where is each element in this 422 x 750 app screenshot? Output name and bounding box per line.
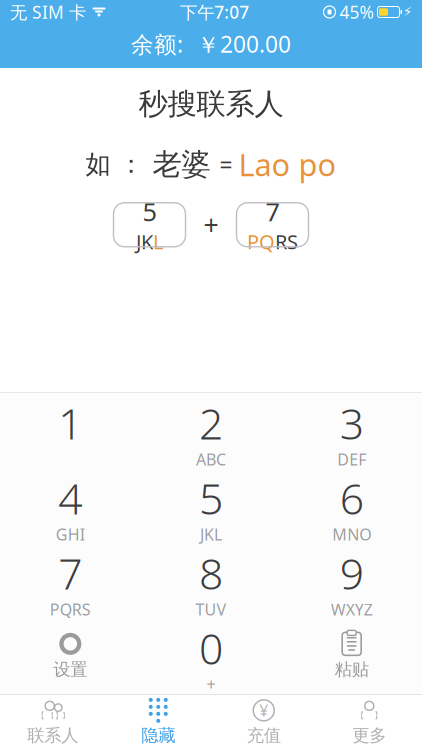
staticText: S — [287, 228, 298, 255]
staticText: 5 — [142, 195, 156, 228]
button[interactable]: 联系人 — [0, 698, 105, 747]
button[interactable]: 3 — [281, 393, 422, 468]
staticText: 45% — [339, 0, 373, 23]
staticText: 更多 — [352, 725, 386, 746]
staticText: 2 — [199, 395, 223, 451]
button[interactable]: 0 — [141, 618, 281, 693]
button[interactable]: 1 — [0, 393, 141, 468]
staticText: 4 — [58, 470, 82, 526]
staticText: JKL — [200, 524, 222, 545]
staticText: WXYZ — [331, 599, 373, 620]
button[interactable]: 2 — [141, 393, 281, 468]
staticText: 充值 — [247, 725, 281, 746]
staticText: P — [247, 228, 259, 255]
button[interactable]: 4 — [0, 468, 141, 543]
staticText: ￥200.00 — [183, 29, 291, 59]
staticText: PQRS — [50, 599, 91, 620]
button[interactable]: 粘贴 — [281, 618, 422, 693]
button[interactable]: 8 — [141, 543, 281, 618]
staticText: 3 — [340, 395, 364, 451]
button[interactable]: 更多 — [316, 698, 422, 747]
staticText: 7 — [58, 545, 82, 601]
staticText: DEF — [337, 449, 366, 470]
staticText: TUV — [195, 599, 226, 620]
staticText: 7 — [265, 195, 279, 228]
staticText: ⚡︎ — [403, 4, 412, 19]
button[interactable]: 6 — [281, 468, 422, 543]
staticText: 联系人 — [27, 725, 78, 746]
button[interactable]: 9 — [281, 543, 422, 618]
staticText: GHI — [56, 524, 85, 545]
button[interactable]: 5 — [141, 468, 281, 543]
button[interactable]: ¥ — [211, 698, 316, 747]
staticText: 余额: — [131, 29, 183, 59]
staticText: 1 — [58, 395, 82, 451]
staticText: MNO — [332, 524, 371, 545]
staticText: 秒搜联系人 — [138, 86, 283, 122]
staticText: 5 — [199, 470, 223, 526]
staticText: 设置 — [53, 659, 87, 680]
button[interactable]: 设置 — [0, 618, 141, 693]
staticText: ABC — [196, 449, 226, 470]
staticText: 隐藏 — [141, 725, 175, 746]
staticText: 6 — [340, 470, 364, 526]
staticText: 0 — [199, 620, 223, 676]
staticText: 8 — [199, 545, 223, 601]
staticText: L — [153, 228, 163, 255]
staticText: K — [141, 228, 153, 255]
staticText: 下午7:07 — [180, 0, 249, 23]
button[interactable]: 隐藏 — [105, 698, 211, 747]
staticText: R — [275, 228, 287, 255]
staticText: 老婆 — [143, 146, 219, 182]
button[interactable]: 7 — [0, 543, 141, 618]
staticText: 无 SIM 卡 — [10, 0, 86, 23]
staticText: + — [203, 207, 218, 242]
staticText: + — [206, 674, 215, 695]
staticText: Q — [259, 228, 275, 255]
staticText: 9 — [340, 545, 364, 601]
staticText: ¥ — [259, 700, 268, 721]
staticText: 如 ： — [85, 149, 143, 180]
staticText: J — [136, 228, 141, 255]
staticText: 粘贴 — [335, 659, 369, 680]
staticText: = — [219, 149, 238, 179]
staticText: Lao po — [238, 144, 336, 185]
